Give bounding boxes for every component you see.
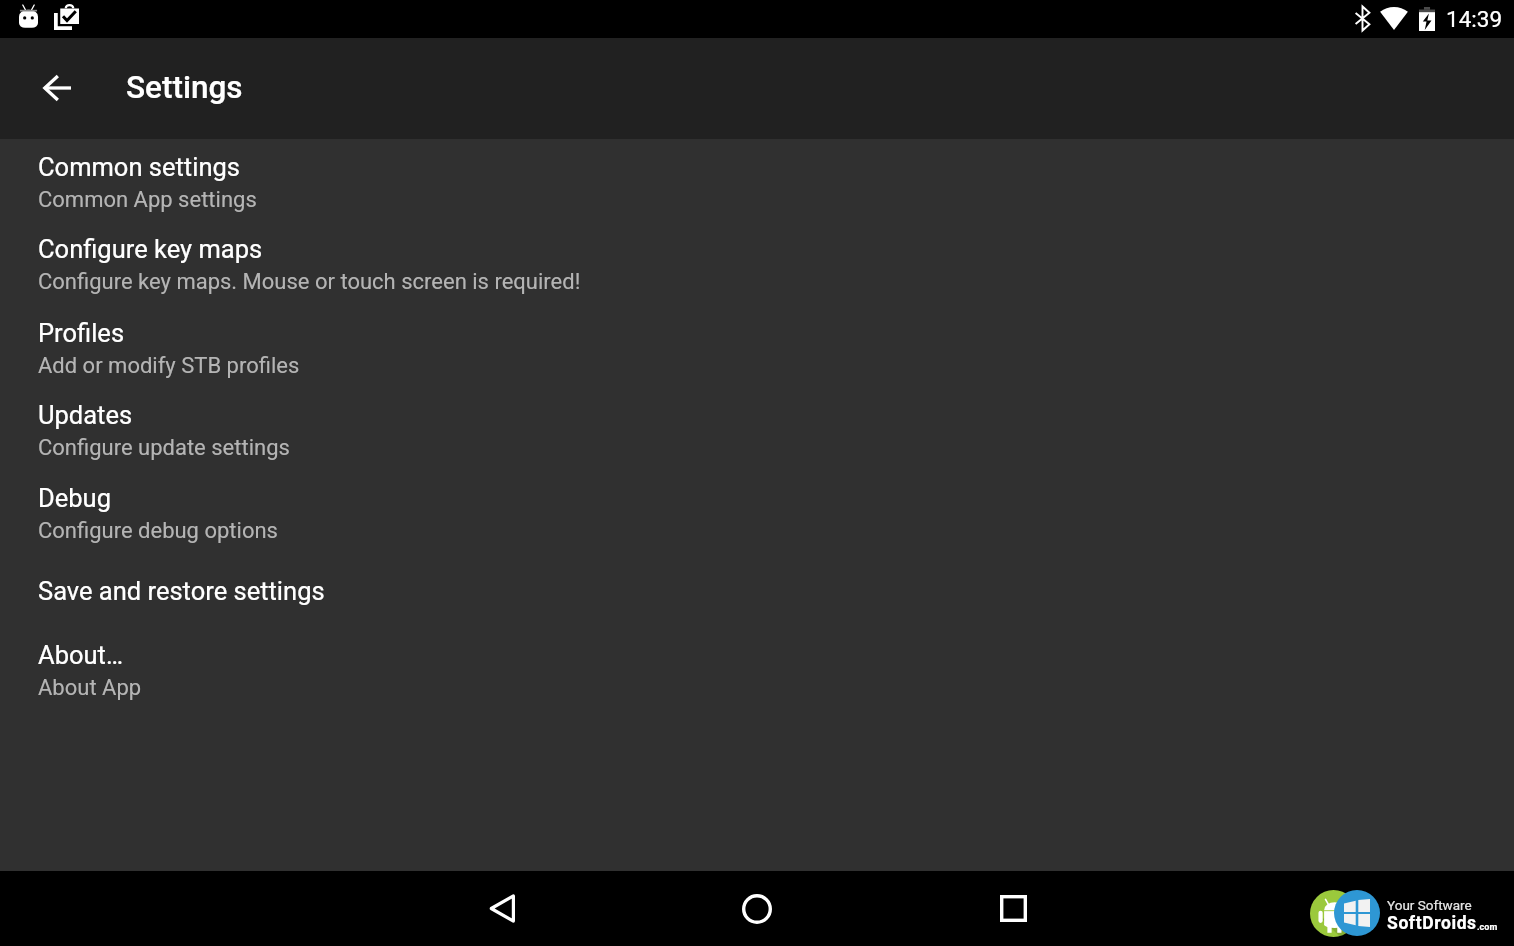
staticText: Save and restore settings [38,576,325,606]
button[interactable]: Debug [0,468,1514,552]
staticText: 14:39 [1446,6,1503,32]
staticText: Add or modify STB profiles [38,353,300,379]
button[interactable]: Home [720,871,794,946]
staticText: Configure key maps. Mouse or touch scree… [38,269,581,295]
staticText: Configure debug options [38,518,278,544]
staticText: Common settings [38,152,240,182]
staticText: .com [1477,922,1498,933]
staticText: Profiles [38,318,125,348]
staticText: Common App settings [38,187,257,213]
staticText: About… [38,640,123,670]
button[interactable]: Save and restore settings [0,561,1514,617]
staticText: Settings [126,69,243,106]
button[interactable]: Recent apps [976,871,1050,946]
button[interactable]: Navigate up [21,52,93,124]
staticText: Configure key maps [38,234,263,264]
button[interactable]: About… [0,625,1514,709]
staticText: Debug [38,483,111,513]
button[interactable]: Configure key maps [0,219,1514,303]
button[interactable]: Common settings [0,137,1514,221]
button[interactable]: Back [465,871,539,946]
staticText: Updates [38,400,133,430]
button[interactable]: Updates [0,385,1514,469]
staticText: Your Software [1387,897,1472,913]
staticText: Configure update settings [38,435,290,461]
button[interactable]: Profiles [0,303,1514,387]
staticText: SoftDroids [1387,913,1477,934]
staticText: About App [38,675,142,701]
